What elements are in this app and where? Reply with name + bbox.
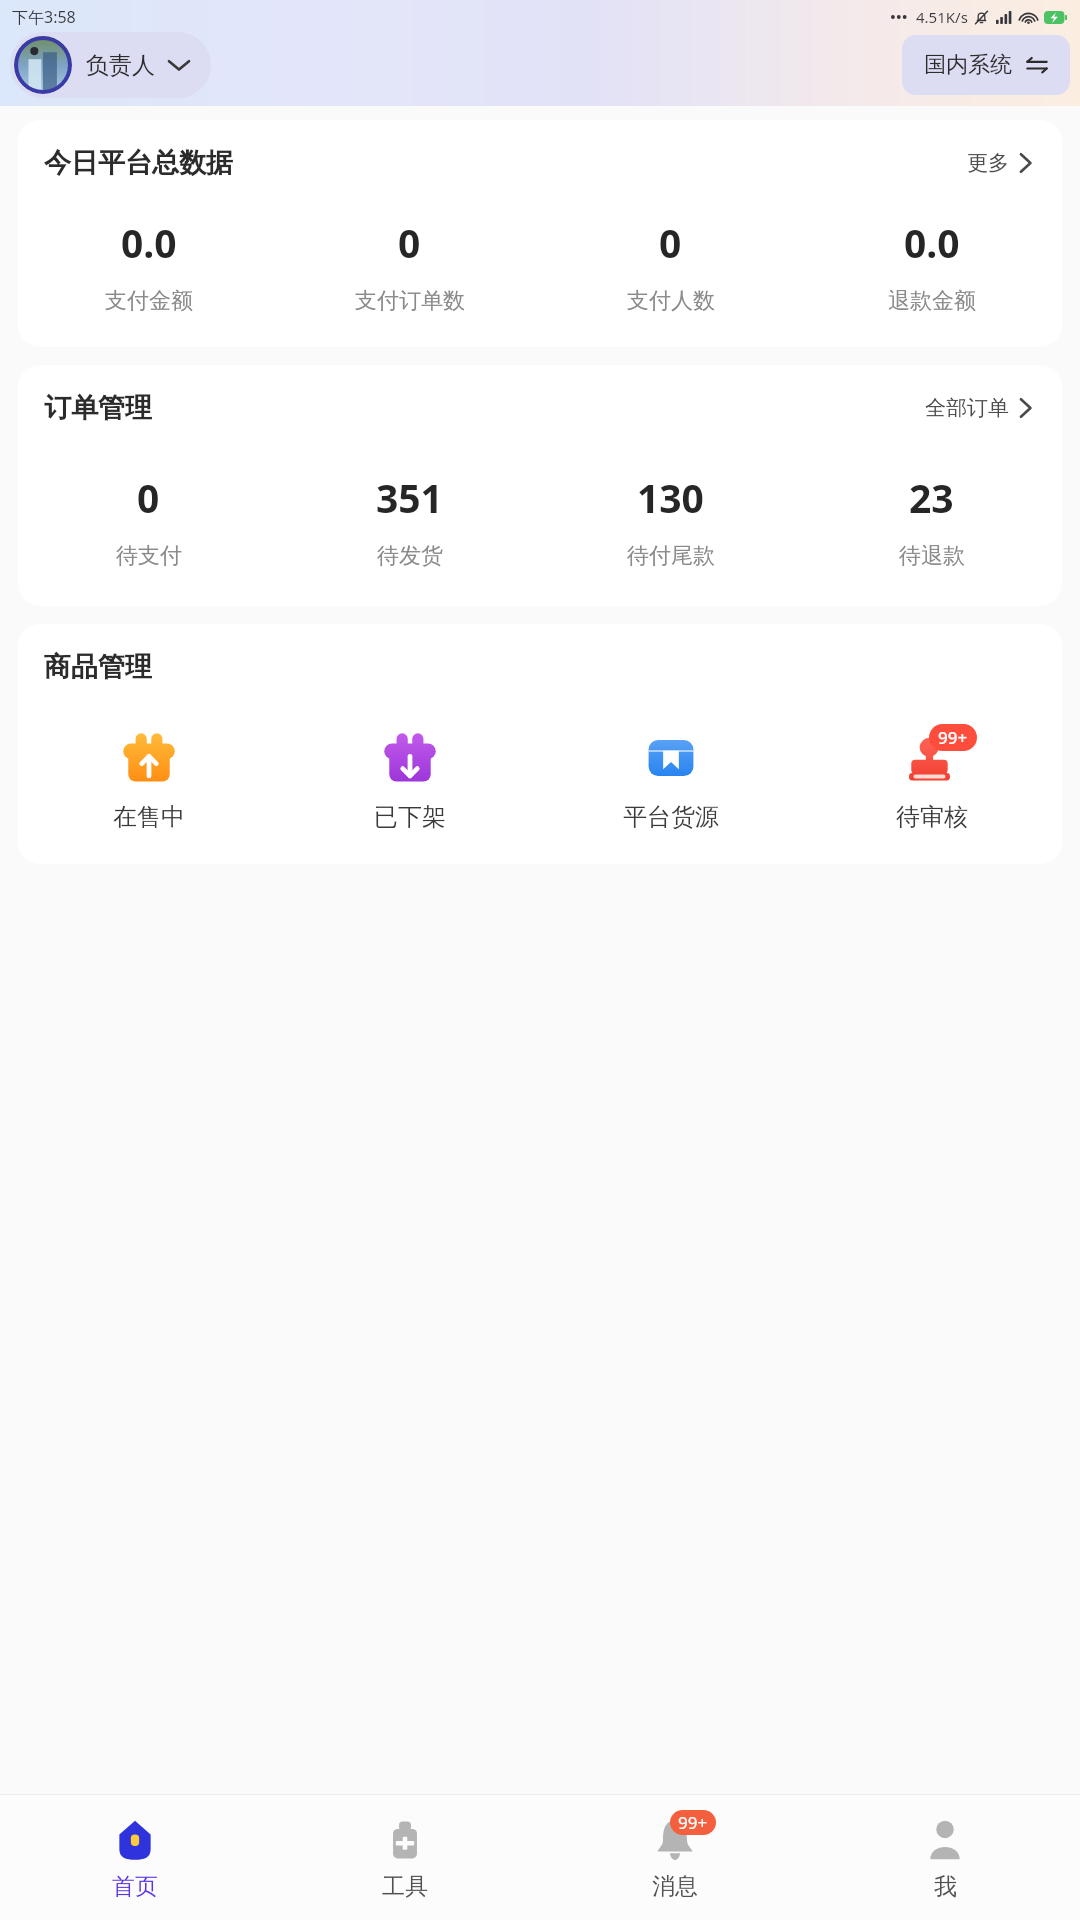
staticText: 待退款 <box>899 542 965 570</box>
button[interactable]: 0 <box>18 469 279 572</box>
staticText: 全部订单 <box>925 395 1009 421</box>
staticText: 99+ <box>678 1811 708 1834</box>
staticText: 99+ <box>938 726 968 749</box>
staticText: 0 <box>398 216 421 269</box>
button[interactable]: 0 <box>279 214 540 317</box>
button[interactable]: 负责人 <box>10 32 211 98</box>
staticText: 0.0 <box>904 216 960 269</box>
staticText: 待支付 <box>116 542 182 570</box>
staticText: 4.51K/s <box>916 7 968 27</box>
button[interactable]: 我 <box>810 1795 1080 1920</box>
staticText: 0 <box>137 471 160 524</box>
staticText: 在售中 <box>113 802 185 832</box>
button[interactable]: 351 <box>279 469 540 572</box>
button[interactable]: 0.0 <box>18 214 279 317</box>
button[interactable]: 国内系统 <box>902 35 1070 95</box>
button[interactable]: 130 <box>540 469 801 572</box>
button[interactable]: 工具 <box>270 1795 540 1920</box>
staticText: 消息 <box>652 1872 698 1901</box>
button[interactable]: 已下架 <box>279 724 540 834</box>
staticText: 0.0 <box>121 216 177 269</box>
staticText: 下午3:58 <box>12 6 76 28</box>
staticText: 351 <box>376 471 443 524</box>
button[interactable]: 0.0 <box>801 214 1062 317</box>
button[interactable]: 全部订单 <box>921 391 1036 425</box>
staticText: 支付人数 <box>627 287 715 315</box>
staticText: 待发货 <box>377 542 443 570</box>
staticText: 0 <box>659 216 682 269</box>
button[interactable]: 在售中 <box>18 724 279 834</box>
staticText: 23 <box>909 471 954 524</box>
staticText: 支付订单数 <box>355 287 465 315</box>
staticText: 国内系统 <box>924 51 1012 79</box>
staticText: 待付尾款 <box>627 542 715 570</box>
staticText: 今日平台总数据 <box>44 146 233 180</box>
button[interactable]: 首页 <box>0 1795 270 1920</box>
staticText: 负责人 <box>86 51 155 80</box>
button[interactable]: 0 <box>540 214 801 317</box>
button[interactable]: 23 <box>801 469 1062 572</box>
staticText: 已下架 <box>374 802 446 832</box>
button[interactable]: 待审核 <box>801 724 1062 834</box>
staticText: 订单管理 <box>44 391 152 425</box>
button[interactable]: 更多 <box>963 146 1036 180</box>
staticText: 退款金额 <box>888 287 976 315</box>
staticText: 待审核 <box>896 802 968 832</box>
staticText: 我 <box>934 1872 957 1901</box>
staticText: 支付金额 <box>105 287 193 315</box>
button[interactable]: 99+ <box>540 1795 810 1920</box>
staticText: 工具 <box>382 1872 428 1901</box>
staticText: 130 <box>637 471 704 524</box>
staticText: 商品管理 <box>44 650 152 684</box>
staticText: 平台货源 <box>623 802 719 832</box>
button[interactable]: 平台货源 <box>540 724 801 834</box>
staticText: 首页 <box>112 1872 158 1901</box>
staticText: 更多 <box>967 150 1009 176</box>
